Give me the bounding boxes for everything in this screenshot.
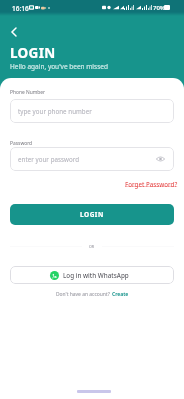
button[interactable]: Forget Password? xyxy=(125,180,178,188)
staticText: Don't have an account? xyxy=(56,291,112,298)
button[interactable]: LOGIN xyxy=(10,204,174,225)
other: Show password xyxy=(156,156,165,162)
button[interactable]: Create xyxy=(112,291,129,298)
staticText: enter your password xyxy=(18,155,80,163)
staticText: Log in with WhatsApp xyxy=(63,271,129,280)
staticText: Password xyxy=(10,140,33,147)
staticText: LOGIN xyxy=(80,210,104,219)
staticText: 16:16 xyxy=(12,4,29,13)
staticText: Hello again, you've been missed xyxy=(10,62,108,71)
staticText: LOGIN xyxy=(10,44,56,62)
staticText: 70% xyxy=(153,4,165,12)
staticText: Phone Number xyxy=(10,89,46,96)
staticText: OR xyxy=(89,244,95,249)
staticText: type your phone number xyxy=(18,107,92,115)
button[interactable]: enter your password xyxy=(10,147,174,171)
button[interactable]: Back xyxy=(5,23,22,40)
button[interactable]: type your phone number xyxy=(10,99,174,123)
button[interactable]: Log in with WhatsApp xyxy=(10,266,174,284)
